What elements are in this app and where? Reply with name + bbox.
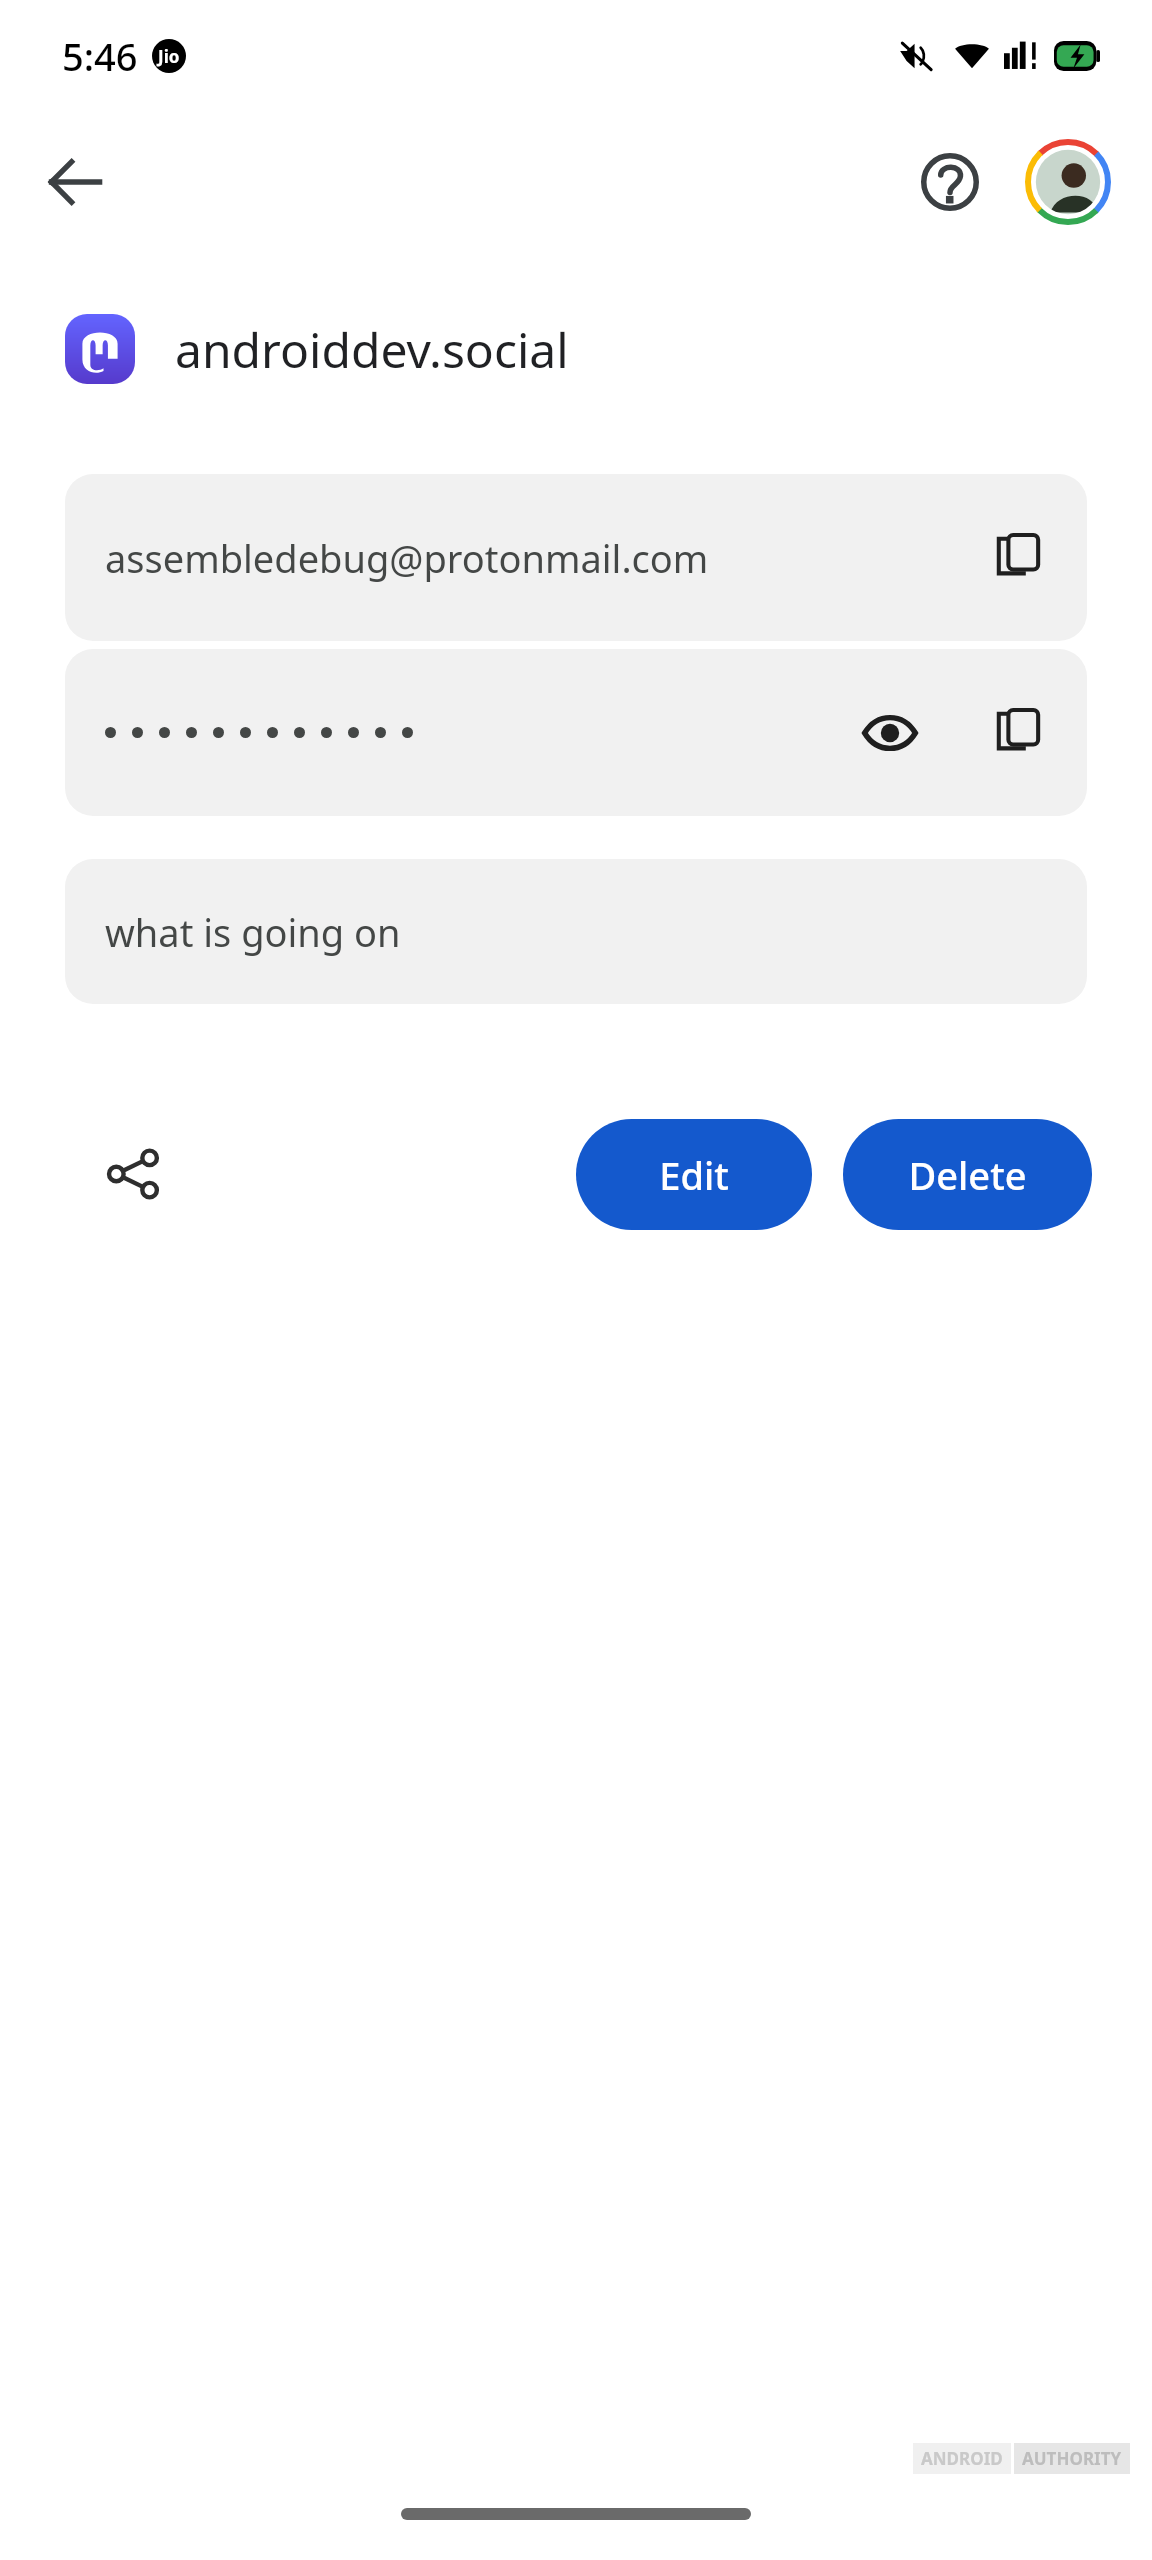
button[interactable]: Account — [1022, 136, 1114, 228]
button[interactable]: Back — [22, 129, 128, 235]
staticText: 5:46 — [62, 30, 138, 82]
button[interactable]: Edit — [576, 1119, 812, 1230]
button[interactable]: Show password — [65, 649, 1087, 816]
button[interactable]: Share — [90, 1130, 178, 1218]
button[interactable]: what is going on — [65, 859, 1087, 1004]
button[interactable]: Copy — [977, 517, 1059, 599]
button[interactable]: Show password — [849, 692, 931, 774]
staticText: assembledebug@protonmail.com — [105, 532, 709, 584]
staticText: androiddev.social — [175, 317, 569, 382]
staticText: Jio — [158, 45, 180, 68]
button[interactable]: assembledebug@protonmail.com — [65, 474, 1087, 641]
button[interactable]: Delete — [843, 1119, 1092, 1230]
staticText: ANDROID — [921, 2447, 1003, 2470]
button[interactable]: Copy — [977, 692, 1059, 774]
staticText: Edit — [659, 1149, 729, 1201]
staticText: AUTHORITY — [1022, 2447, 1122, 2470]
button[interactable]: Help — [902, 134, 998, 230]
staticText: what is going on — [105, 906, 401, 958]
staticText: Delete — [908, 1149, 1027, 1201]
